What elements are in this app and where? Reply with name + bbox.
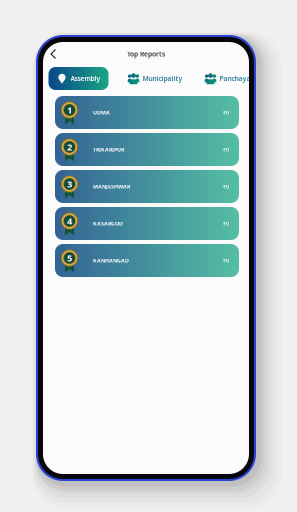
staticText: 2 (67, 141, 72, 153)
button[interactable]: 4 (55, 207, 239, 240)
button[interactable]: Municipality (127, 67, 182, 90)
staticText: KASARGOD (93, 220, 123, 227)
staticText: KANHANGAD (93, 257, 129, 264)
button[interactable]: 5 (55, 244, 239, 277)
staticText: 5 (67, 252, 72, 264)
staticText: ₹0 (223, 220, 229, 227)
staticText: ₹0 (223, 257, 229, 264)
staticText: Municipality (142, 74, 182, 83)
staticText: ₹0 (223, 146, 229, 153)
button[interactable]: 3 (55, 170, 239, 203)
staticText: MANJESHWAR (93, 183, 130, 190)
button[interactable]: Assembly (48, 67, 108, 90)
staticText: UDMA (93, 109, 110, 116)
button[interactable]: Back (43, 43, 64, 65)
staticText: 3 (67, 178, 72, 190)
button[interactable]: 1 (55, 96, 239, 129)
staticText: TRIKARIPUR (93, 146, 124, 153)
staticText: ₹0 (223, 183, 229, 190)
staticText: 4 (67, 215, 72, 227)
button[interactable]: 2 (55, 133, 239, 166)
staticText: Top Reports (127, 50, 165, 58)
staticText: ₹0 (223, 109, 229, 116)
staticText: 1 (67, 104, 72, 116)
staticText: Panchayat (219, 74, 253, 83)
button[interactable]: Panchayat (204, 67, 253, 90)
staticText: Assembly (70, 74, 100, 83)
